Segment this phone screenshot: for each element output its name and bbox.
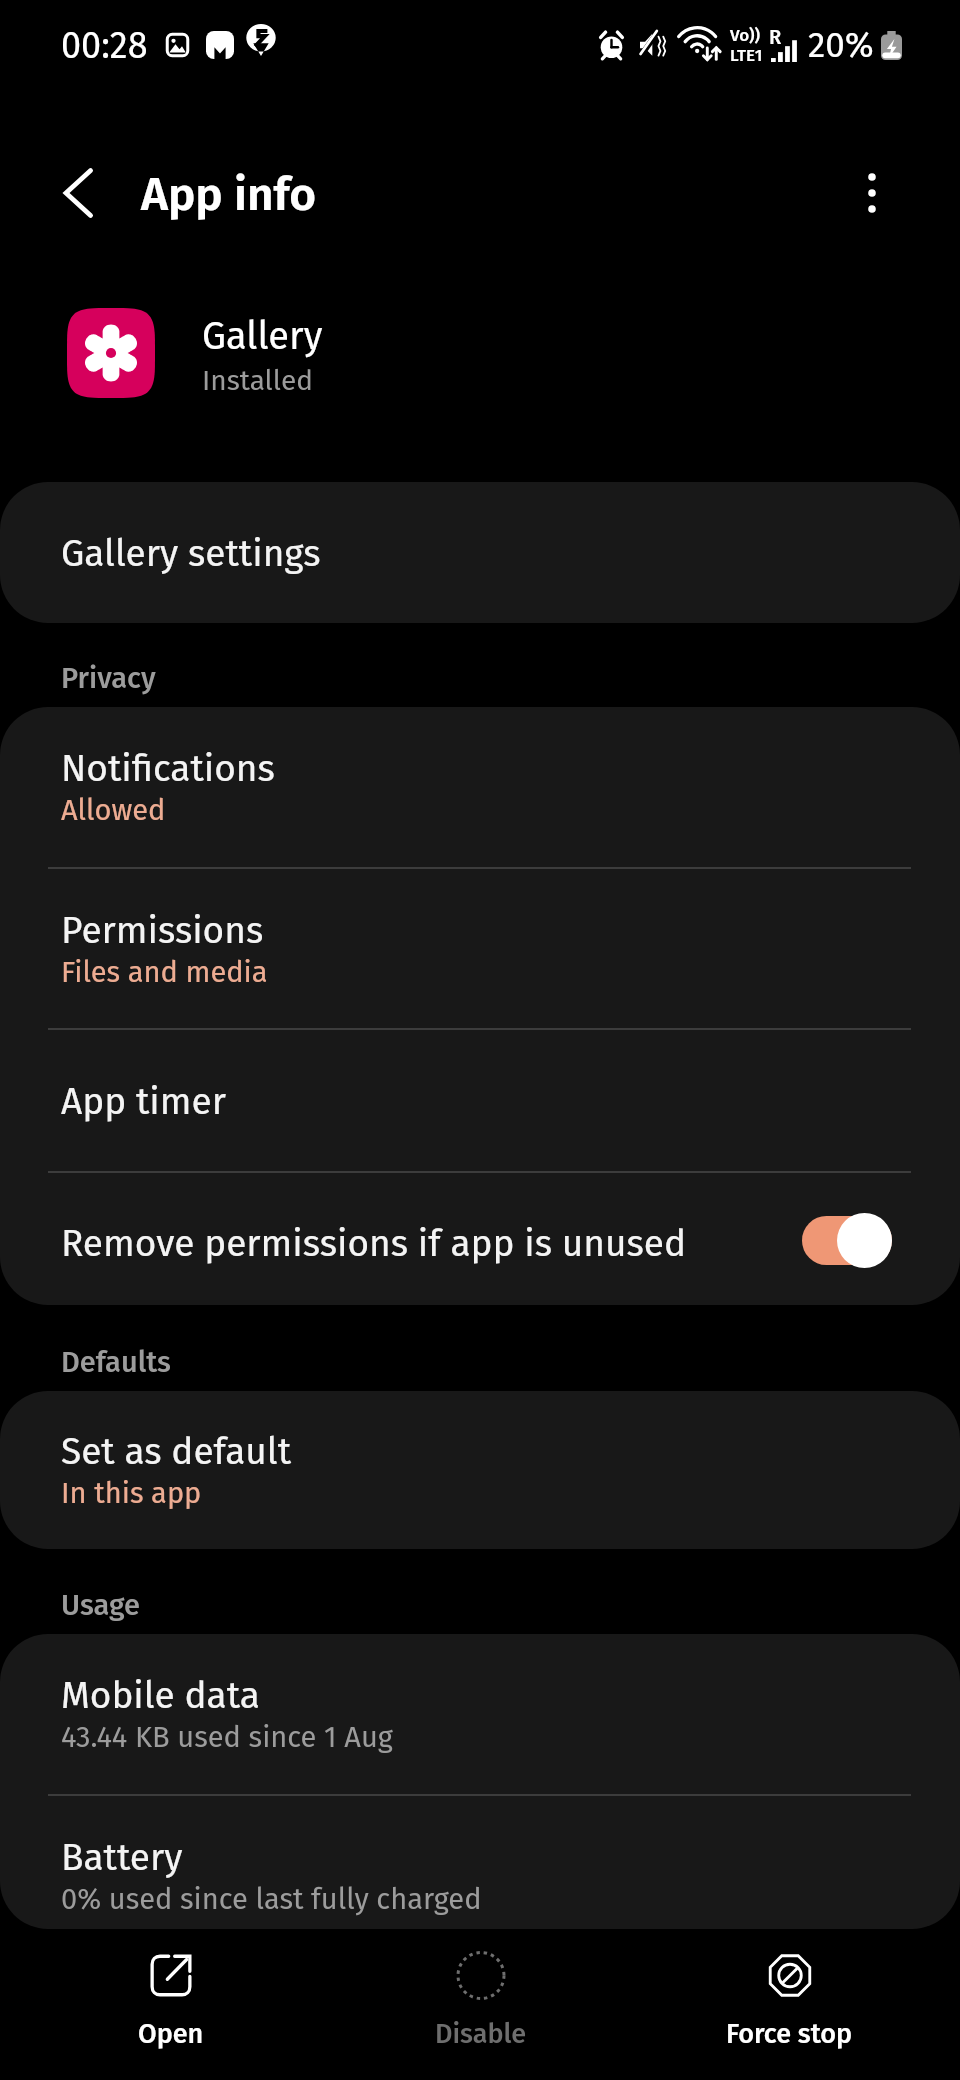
staticText: Notifications — [61, 746, 275, 790]
staticText: Gallery settings — [61, 531, 321, 575]
button[interactable]: Disable — [326, 1929, 635, 2080]
staticText: Allowed — [61, 793, 166, 828]
staticText: Installed — [202, 364, 313, 398]
staticText: Files and media — [61, 955, 268, 990]
staticText: Set as default — [61, 1429, 292, 1473]
button[interactable]: App timer — [0, 1030, 960, 1171]
button[interactable]: Open — [16, 1929, 326, 2080]
staticText: Permissions — [61, 908, 264, 952]
button[interactable]: Remove permissions if app is unused — [0, 1173, 960, 1305]
staticText: 20% — [808, 24, 874, 66]
button[interactable]: Notifications — [0, 707, 960, 867]
staticText: Privacy — [61, 661, 156, 696]
staticText: Vo)) — [730, 25, 761, 45]
staticText: Usage — [61, 1588, 140, 1623]
button[interactable]: Permissions — [0, 869, 960, 1028]
button[interactable]: Gallery settings — [0, 482, 960, 623]
button[interactable]: Set as default — [0, 1391, 960, 1549]
staticText: LTE1 — [730, 45, 763, 65]
button[interactable]: Navigate up — [0, 130, 136, 255]
staticText: Defaults — [61, 1345, 171, 1380]
staticText: Mobile data — [61, 1673, 260, 1717]
staticText: Open — [138, 2018, 204, 2050]
staticText: App info — [141, 167, 317, 222]
staticText: App timer — [61, 1079, 226, 1123]
button[interactable]: Mobile data — [0, 1634, 960, 1794]
button[interactable]: Battery — [0, 1796, 960, 1929]
staticText: Gallery — [202, 313, 323, 359]
staticText: Battery — [61, 1835, 183, 1879]
button[interactable]: Force stop — [635, 1929, 944, 2080]
button[interactable]: More options — [840, 130, 960, 255]
staticText: Force stop — [726, 2018, 853, 2050]
staticText: Remove permissions if app is unused — [61, 1221, 802, 1265]
staticText: In this app — [61, 1476, 202, 1511]
staticText: 00:28 — [61, 24, 148, 67]
staticText: 0% used since last fully charged — [61, 1882, 482, 1917]
staticText: 43.44 KB used since 1 Aug — [61, 1720, 393, 1755]
staticText: R — [769, 25, 782, 49]
staticText: Disable — [435, 2018, 527, 2050]
